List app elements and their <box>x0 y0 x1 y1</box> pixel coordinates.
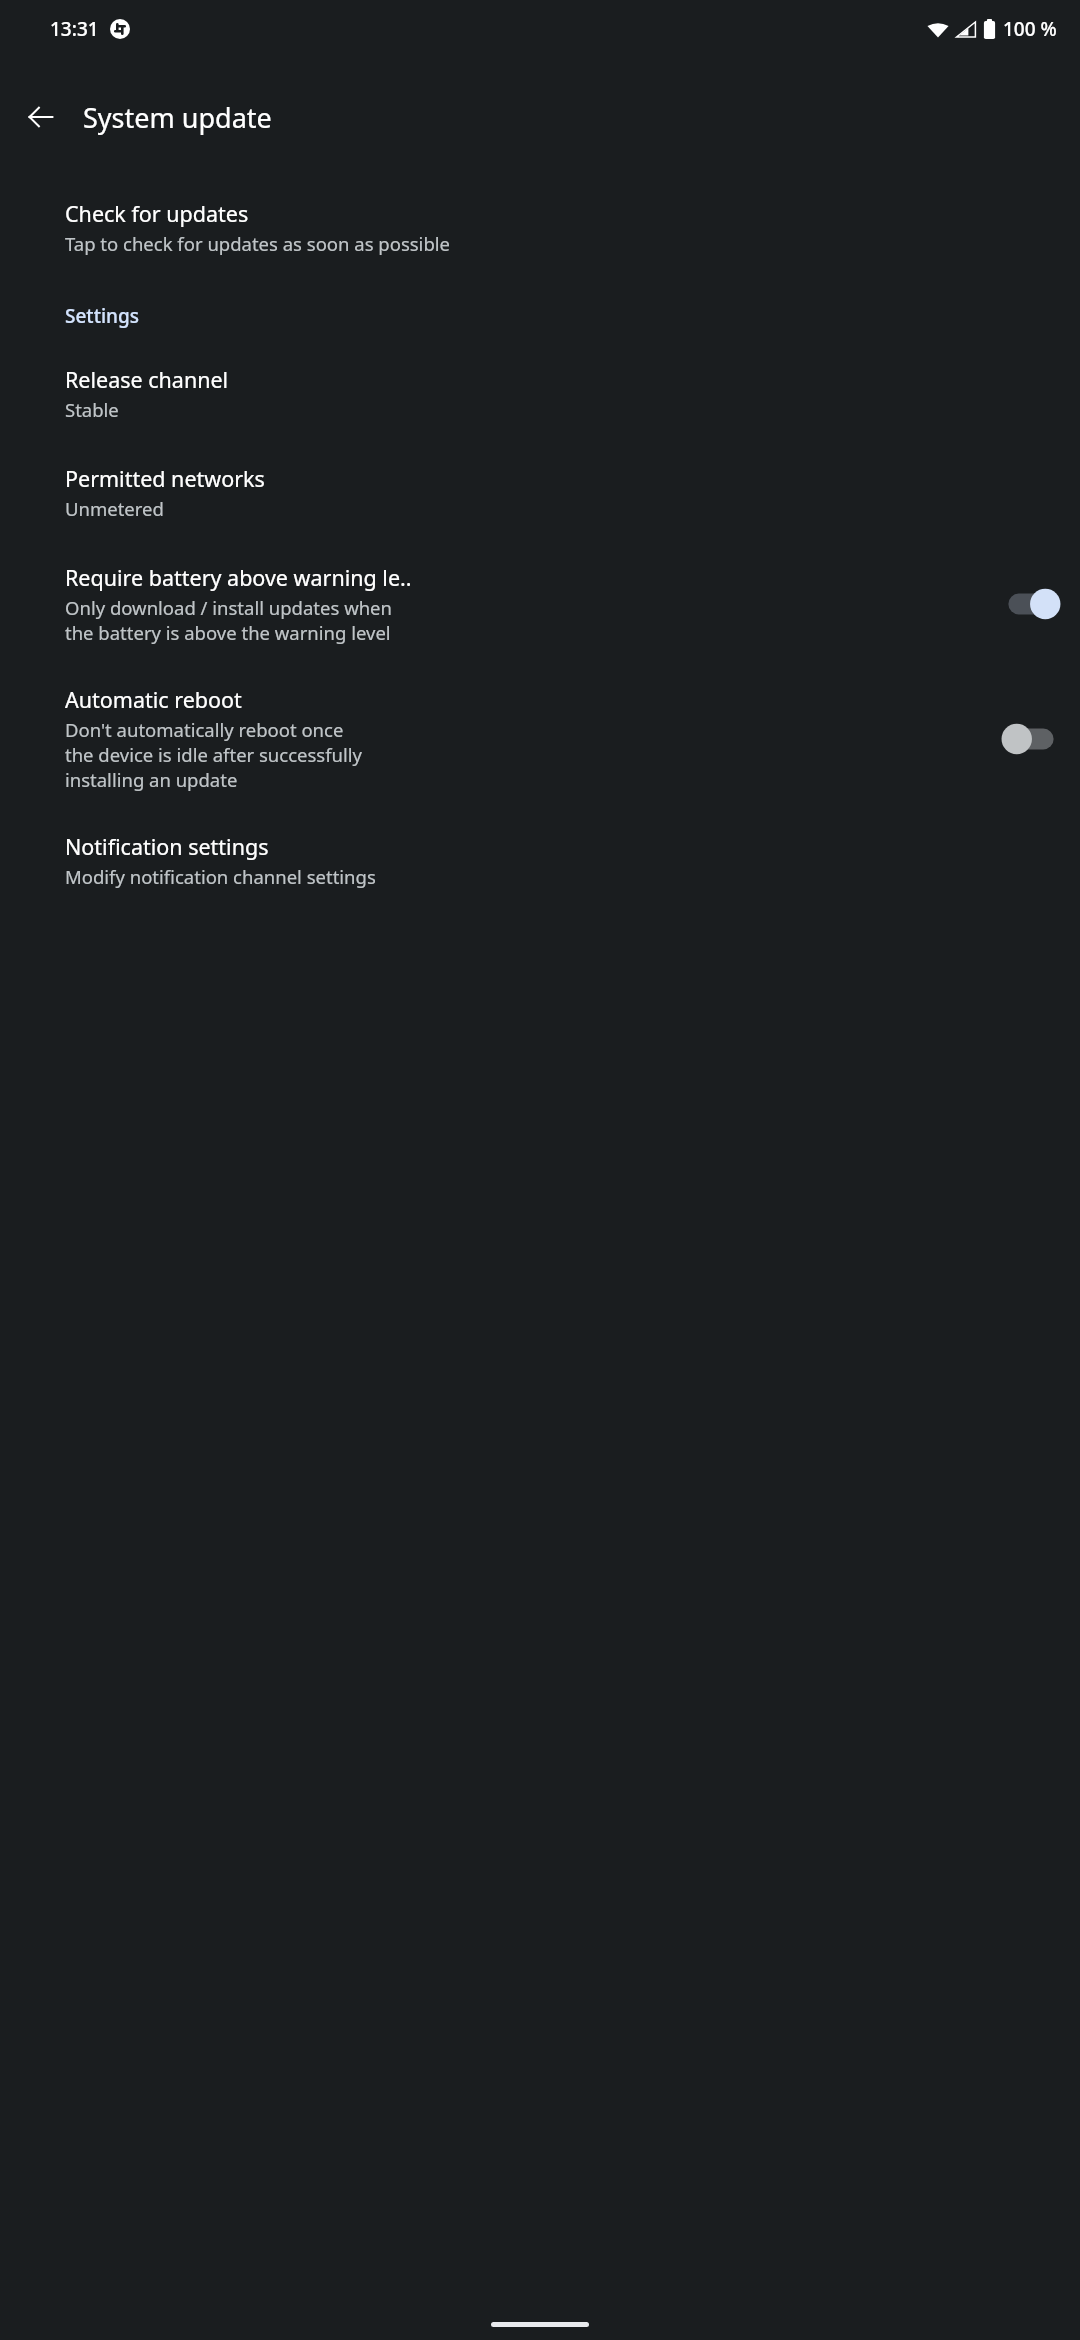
button[interactable]: On <box>1002 584 1060 624</box>
staticText: Stable <box>65 397 119 422</box>
staticText: Don't automatically reboot once the devi… <box>65 717 363 792</box>
staticText: System update <box>83 99 272 136</box>
staticText: Check for updates <box>65 199 249 228</box>
button[interactable]: Notification settings <box>0 792 1080 889</box>
button[interactable]: Off <box>1002 719 1060 759</box>
button[interactable]: Permitted networks <box>0 422 1080 521</box>
button[interactable]: Require battery above warning le.. <box>0 521 1080 645</box>
staticText: Release channel <box>65 365 229 394</box>
staticText: Modify notification channel settings <box>65 864 376 889</box>
staticText: Tap to check for updates as soon as poss… <box>65 231 450 256</box>
staticText: Automatic reboot <box>65 685 242 714</box>
staticText: Unmetered <box>65 496 164 521</box>
staticText: Notification settings <box>65 832 269 861</box>
staticText: Require battery above warning le.. <box>65 563 412 592</box>
staticText: 100 % <box>1003 16 1057 42</box>
staticText: Permitted networks <box>65 464 265 493</box>
staticText: Only download / install updates when the… <box>65 595 392 645</box>
button[interactable]: Check for updates <box>0 153 1080 256</box>
staticText: 13:31 <box>50 16 99 42</box>
button[interactable]: Release channel <box>0 329 1080 422</box>
button[interactable]: Back <box>12 88 70 146</box>
button[interactable]: Automatic reboot <box>0 645 1080 792</box>
staticText: Settings <box>65 303 139 329</box>
